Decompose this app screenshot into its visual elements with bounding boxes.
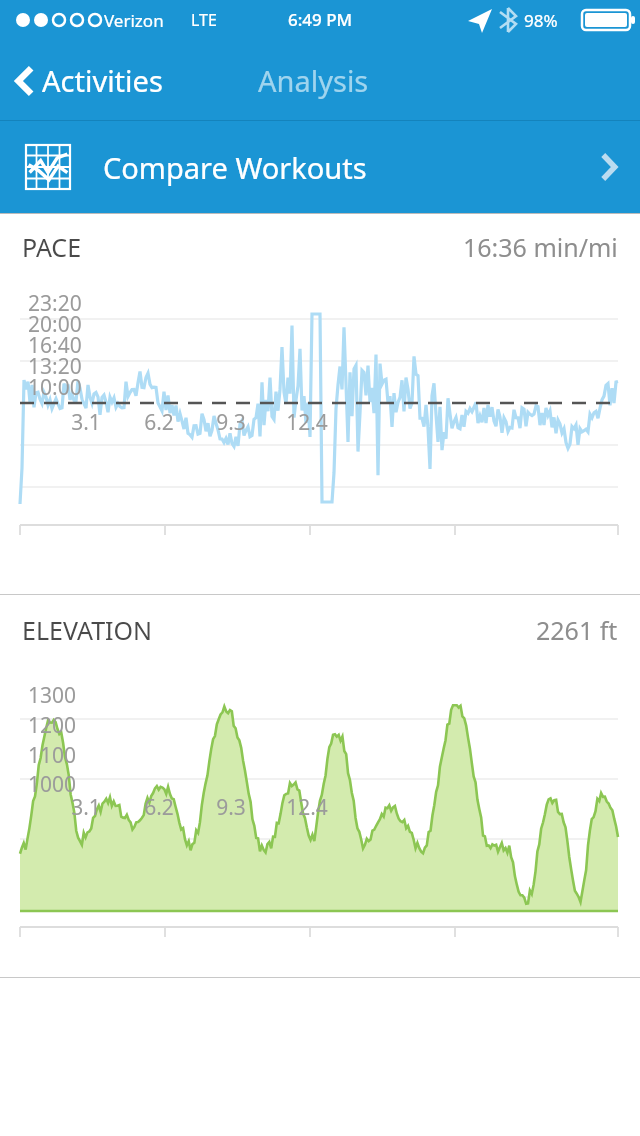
staticText: PACE (22, 230, 82, 264)
staticText: 98% (524, 9, 558, 32)
staticText: 9.3 (216, 793, 246, 822)
staticText: 23:20 (28, 289, 82, 318)
staticText: 10:00 (28, 373, 82, 402)
staticText: 1100 (28, 741, 77, 770)
staticText: 6.2 (144, 408, 174, 437)
staticText: 13:20 (28, 352, 82, 381)
other: Open compare workouts (600, 152, 618, 182)
button[interactable]: Compare Workouts (0, 121, 640, 213)
staticText: LTE (191, 9, 217, 31)
staticText: 16:36 min/mi (463, 230, 618, 264)
staticText: 2261 ft (536, 613, 618, 647)
staticText: 1300 (28, 681, 77, 710)
staticText: 12.4 (286, 793, 328, 822)
staticText: 6:49 PM (288, 8, 353, 31)
staticText: Analysis (258, 61, 369, 100)
staticText: 16:40 (28, 331, 82, 360)
staticText: 3.1 (71, 408, 101, 437)
staticText: 9.3 (216, 408, 246, 437)
staticText: 20:00 (28, 310, 82, 339)
staticText: ELEVATION (22, 613, 153, 647)
staticText: 3.1 (71, 793, 101, 822)
button[interactable]: Activities (0, 53, 173, 108)
staticText: Compare Workouts (103, 148, 367, 187)
staticText: 12.4 (286, 408, 328, 437)
staticText: 6.2 (144, 793, 174, 822)
staticText: 1000 (28, 770, 77, 799)
staticText: Activities (42, 61, 163, 100)
staticText: 1200 (28, 711, 77, 740)
staticText: Verizon (104, 9, 164, 32)
